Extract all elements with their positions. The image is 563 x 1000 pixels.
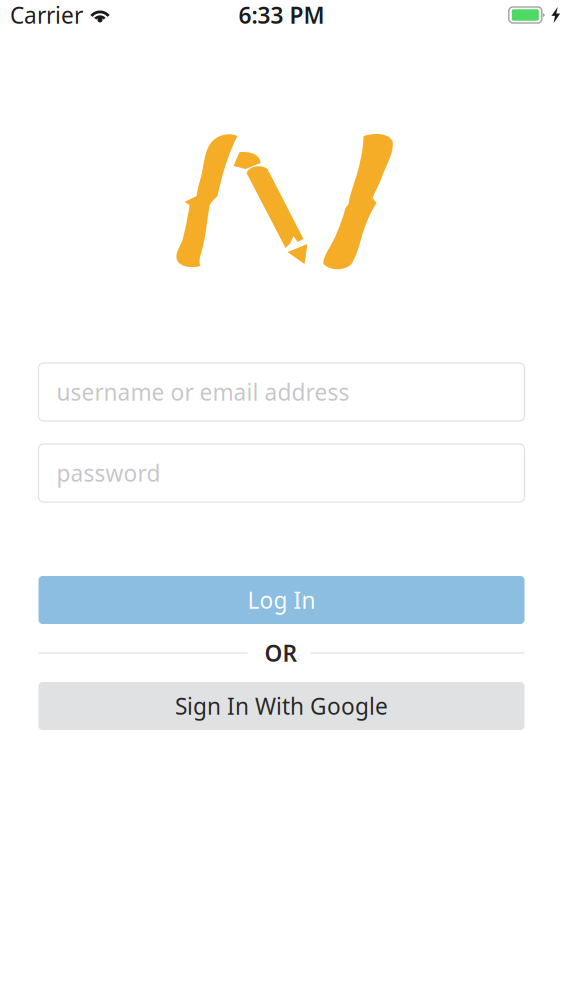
staticText: Carrier [10, 0, 83, 30]
staticText: Sign In With Google [175, 691, 388, 721]
button[interactable]: Log In [38, 576, 524, 624]
staticText: username or email address [56, 377, 349, 407]
button[interactable]: username or email address [38, 363, 524, 421]
button[interactable]: password [38, 444, 524, 502]
staticText: OR [264, 638, 297, 668]
staticText: 6:33 PM [238, 0, 324, 30]
button[interactable]: Sign In With Google [38, 682, 524, 730]
staticText: password [56, 458, 160, 488]
staticText: Log In [247, 585, 315, 615]
